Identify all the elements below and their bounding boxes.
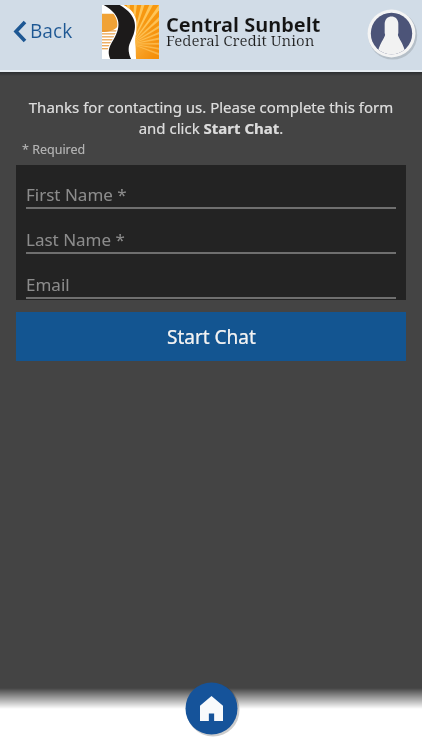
staticText: Email (26, 273, 70, 296)
button[interactable]: Back (8, 10, 79, 52)
staticText: Last Name * (26, 228, 125, 251)
staticText: First Name * (26, 183, 127, 206)
staticText: Back (30, 18, 73, 44)
staticText: Start Chat (167, 324, 256, 350)
button[interactable]: Home (185, 682, 238, 735)
staticText: Central Sunbelt (166, 11, 321, 38)
staticText: Federal Credit Union (166, 30, 315, 50)
staticText: * Required (22, 141, 86, 158)
button[interactable]: Start Chat (16, 312, 406, 361)
staticText: Thanks for contacting us. Please complet… (20, 97, 402, 139)
button[interactable]: Profile (367, 9, 416, 58)
